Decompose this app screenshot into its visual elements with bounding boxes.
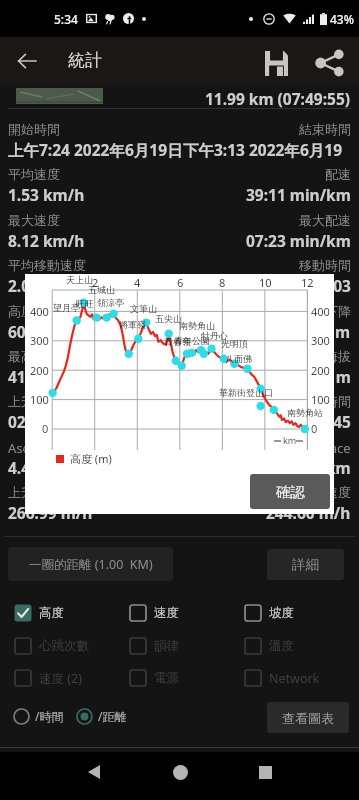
staticText: 400	[30, 304, 49, 319]
staticText: Ascent	[8, 439, 49, 457]
staticText: 華新街登山口	[219, 387, 273, 398]
staticText: 光明頂	[221, 338, 248, 349]
staticText: 下午3:13 2022年6月19日	[183, 139, 351, 160]
button[interactable]: 一圈的距離 (1.00 KM)	[8, 547, 173, 581]
staticText: 結束時間	[299, 121, 351, 137]
staticText: 200	[30, 363, 49, 378]
staticText: 溫度	[269, 638, 294, 654]
staticText: 望月亭	[53, 302, 80, 313]
button[interactable]: 心跳次數	[14, 635, 89, 657]
button[interactable]: 溫度	[244, 635, 294, 657]
staticText: 配速	[325, 166, 351, 182]
staticText: 8	[219, 275, 226, 290]
staticText: 10	[259, 275, 272, 290]
staticText: 410 m	[8, 366, 54, 387]
staticText: 2	[92, 275, 99, 290]
staticText: 11.99 km (07:49:55)	[205, 88, 351, 109]
button[interactable]: 速度	[129, 602, 179, 624]
staticText: 上升時間	[8, 393, 60, 409]
staticText: 05:56:03	[289, 275, 351, 296]
staticText: 五城山	[88, 284, 115, 295]
button[interactable]: Save	[254, 41, 298, 85]
staticText: 400	[311, 304, 330, 319]
staticText: 200	[311, 363, 330, 378]
staticText: /距離	[98, 708, 127, 724]
staticText: 最高高度	[8, 348, 60, 364]
button[interactable]: 詳細	[267, 549, 344, 580]
button[interactable]: Network	[244, 667, 320, 689]
staticText: 下降垂直速度	[273, 484, 351, 500]
staticText: 統計	[68, 50, 102, 71]
staticText: 最大配速	[299, 212, 351, 228]
staticText: 八面佛	[225, 353, 252, 364]
staticText: 300	[311, 333, 330, 348]
staticText: 平均速度	[8, 166, 60, 182]
staticText: 速度	[154, 605, 179, 621]
staticText: 上午7:24 2022年6月19日	[8, 139, 183, 160]
staticText: 100	[30, 392, 49, 407]
button[interactable]: 坡度	[244, 602, 294, 624]
button[interactable]: /時間	[13, 705, 64, 727]
staticText: 南勢角山	[179, 320, 215, 331]
button[interactable]: Back	[5, 39, 49, 83]
staticText: 旺旺	[76, 298, 94, 309]
staticText: 0	[42, 421, 49, 436]
button[interactable]: Share	[308, 41, 352, 85]
staticText: 02:19:45	[289, 411, 351, 432]
staticText: 2.02 km/h	[8, 275, 85, 296]
button[interactable]: 速度 (2)	[14, 667, 82, 689]
staticText: 266.99 m/h	[8, 502, 93, 523]
staticText: 39:11 min/km	[246, 184, 351, 205]
button[interactable]: Home	[156, 748, 204, 796]
staticText: 海拔	[325, 348, 351, 364]
staticText: 6	[177, 275, 184, 290]
staticText: 速度 (2)	[39, 670, 82, 687]
button[interactable]: 確認	[250, 474, 330, 509]
staticText: 領涼亭	[97, 297, 124, 308]
staticText: 43%	[330, 11, 354, 27]
staticText: 1,104 m	[291, 321, 351, 342]
staticText: Network	[269, 670, 320, 687]
staticText: 187 m	[305, 366, 351, 387]
staticText: 南勢角站	[287, 407, 323, 418]
button[interactable]: /距離	[76, 705, 127, 727]
button[interactable]: 查看圖表	[267, 702, 349, 733]
staticText: km	[283, 434, 297, 446]
staticText: 12	[301, 275, 314, 290]
staticText: 開始時間	[8, 121, 60, 137]
staticText: 青年公園	[174, 335, 210, 346]
staticText: 0	[311, 421, 318, 436]
button[interactable]: Recent apps	[241, 748, 289, 796]
button[interactable]: 韻律	[129, 635, 179, 657]
staticText: 5:34	[54, 11, 78, 27]
staticText: 確認	[276, 483, 305, 501]
staticText: 高度 (m)	[70, 451, 112, 466]
staticText: 平均移動速度	[8, 257, 86, 273]
staticText: 韻律	[154, 638, 179, 654]
button[interactable]: Back	[70, 748, 118, 796]
staticText: 查看圖表	[282, 710, 334, 726]
staticText: 最大速度	[8, 212, 60, 228]
staticText: 02:13:21	[8, 411, 70, 432]
staticText: 電源	[154, 670, 179, 686]
staticText: 將軍嶺	[119, 319, 146, 330]
staticText: 1.53 km/h	[8, 184, 85, 205]
staticText: 上升垂直速度	[8, 484, 86, 500]
staticText: /時間	[35, 708, 64, 724]
staticText: 下降時間	[299, 393, 351, 409]
staticText: 天上山	[66, 274, 93, 285]
staticText: Descent pace	[269, 439, 351, 457]
staticText: 高度	[8, 303, 34, 319]
staticText: 100	[311, 392, 330, 407]
staticText: 300	[30, 333, 49, 348]
staticText: 608 m	[8, 321, 54, 342]
staticText: 詳細	[292, 556, 319, 573]
staticText: 文筆山	[130, 303, 157, 314]
staticText: 移動時間	[299, 257, 351, 273]
staticText: 青春嶺	[164, 336, 191, 347]
staticText: 8.12 km/h	[8, 230, 85, 251]
button[interactable]: 高度	[14, 602, 64, 624]
button[interactable]: 電源	[129, 667, 179, 689]
staticText: 244.60 m/h	[266, 502, 351, 523]
staticText: 坡度	[269, 605, 294, 621]
